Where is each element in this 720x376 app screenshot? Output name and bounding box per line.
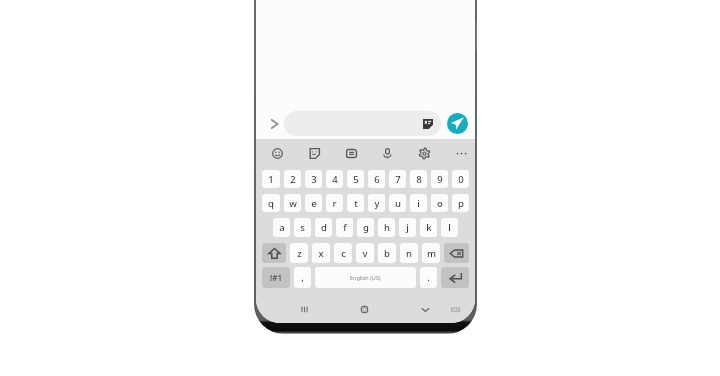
button[interactable]: Sticker xyxy=(305,144,323,162)
button[interactable]: u xyxy=(389,194,406,212)
staticText: v xyxy=(362,247,368,260)
button[interactable]: 6 xyxy=(368,170,385,188)
button[interactable]: g xyxy=(357,218,374,237)
staticText: p xyxy=(458,197,464,210)
staticText: 6 xyxy=(374,173,380,186)
button[interactable]: 8 xyxy=(410,170,427,188)
staticText: 4 xyxy=(332,173,338,186)
button[interactable]: Recents xyxy=(295,300,313,318)
staticText: . xyxy=(427,271,430,284)
staticText: q xyxy=(268,197,274,210)
button[interactable]: 3 xyxy=(305,170,322,188)
staticText: 3 xyxy=(311,173,317,186)
button[interactable]: y xyxy=(368,194,385,212)
button[interactable]: Settings xyxy=(415,144,433,162)
staticText: 8 xyxy=(416,173,422,186)
staticText: g xyxy=(363,221,369,234)
staticText: , xyxy=(301,271,304,284)
staticText: l xyxy=(448,221,451,234)
button[interactable]: n xyxy=(400,243,418,263)
button[interactable]: 0 xyxy=(452,170,469,188)
button[interactable]: !#1 xyxy=(262,267,290,288)
button[interactable]: p xyxy=(452,194,469,212)
button[interactable]: k xyxy=(420,218,437,237)
button[interactable]: Attach xyxy=(266,116,282,132)
staticText: s xyxy=(300,221,305,234)
button[interactable]: More xyxy=(452,144,470,162)
button[interactable]: , xyxy=(294,267,311,288)
staticText: r xyxy=(332,197,337,210)
button[interactable]: English (US) xyxy=(315,267,416,288)
button[interactable]: o xyxy=(431,194,448,212)
staticText: e xyxy=(311,197,317,210)
staticText: d xyxy=(321,221,327,234)
staticText: 7 xyxy=(395,173,401,186)
button[interactable]: Home xyxy=(355,300,373,318)
staticText: c xyxy=(341,247,346,260)
button[interactable]: Enter xyxy=(441,267,469,288)
staticText: x xyxy=(318,247,324,260)
button[interactable]: . xyxy=(420,267,437,288)
button[interactable]: z xyxy=(290,243,308,263)
staticText: 9 xyxy=(437,173,443,186)
button[interactable]: x xyxy=(312,243,330,263)
button[interactable]: Sticker xyxy=(284,111,441,136)
button[interactable]: Keyboard xyxy=(446,300,464,318)
button[interactable]: a xyxy=(273,218,290,237)
staticText: w xyxy=(289,197,297,210)
staticText: 1 xyxy=(268,173,274,186)
button[interactable]: 9 xyxy=(431,170,448,188)
button[interactable]: 7 xyxy=(389,170,406,188)
button[interactable]: 2 xyxy=(284,170,301,188)
staticText: o xyxy=(437,197,443,210)
staticText: f xyxy=(343,221,347,234)
staticText: 2 xyxy=(290,173,296,186)
staticText: !#1 xyxy=(270,272,282,283)
button[interactable]: Voice input xyxy=(378,144,396,162)
button[interactable]: h xyxy=(378,218,395,237)
button[interactable]: e xyxy=(305,194,322,212)
button[interactable]: l xyxy=(441,218,458,237)
button[interactable]: Send xyxy=(447,113,468,134)
button[interactable]: Shift xyxy=(262,243,286,263)
button[interactable]: d xyxy=(315,218,332,237)
button[interactable]: Emoji xyxy=(268,144,286,162)
staticText: y xyxy=(374,197,380,210)
staticText: m xyxy=(427,247,436,260)
button[interactable]: Backspace xyxy=(444,243,469,263)
staticText: h xyxy=(384,221,390,234)
button[interactable]: j xyxy=(399,218,416,237)
button[interactable]: t xyxy=(347,194,364,212)
staticText: English (US) xyxy=(350,274,381,281)
staticText: t xyxy=(354,197,358,210)
button[interactable]: w xyxy=(284,194,301,212)
staticText: i xyxy=(417,197,420,210)
button[interactable]: r xyxy=(326,194,343,212)
button[interactable]: m xyxy=(422,243,440,263)
button[interactable]: s xyxy=(294,218,311,237)
staticText: a xyxy=(279,221,285,234)
button[interactable]: GIF xyxy=(342,144,360,162)
button[interactable]: v xyxy=(356,243,374,263)
button[interactable]: 5 xyxy=(347,170,364,188)
staticText: z xyxy=(297,247,302,260)
button[interactable]: q xyxy=(262,194,280,212)
staticText: 0 xyxy=(458,173,464,186)
button[interactable]: f xyxy=(336,218,353,237)
button[interactable]: b xyxy=(378,243,396,263)
button[interactable]: 4 xyxy=(326,170,343,188)
staticText: u xyxy=(395,197,401,210)
button[interactable]: i xyxy=(410,194,427,212)
button[interactable]: Hide keyboard xyxy=(416,300,434,318)
button[interactable]: Sticker xyxy=(422,118,434,130)
staticText: 5 xyxy=(353,173,359,186)
staticText: j xyxy=(406,221,409,234)
staticText: n xyxy=(406,247,412,260)
staticText: k xyxy=(426,221,432,234)
button[interactable]: 1 xyxy=(262,170,280,188)
button[interactable]: c xyxy=(334,243,352,263)
staticText: b xyxy=(384,247,390,260)
